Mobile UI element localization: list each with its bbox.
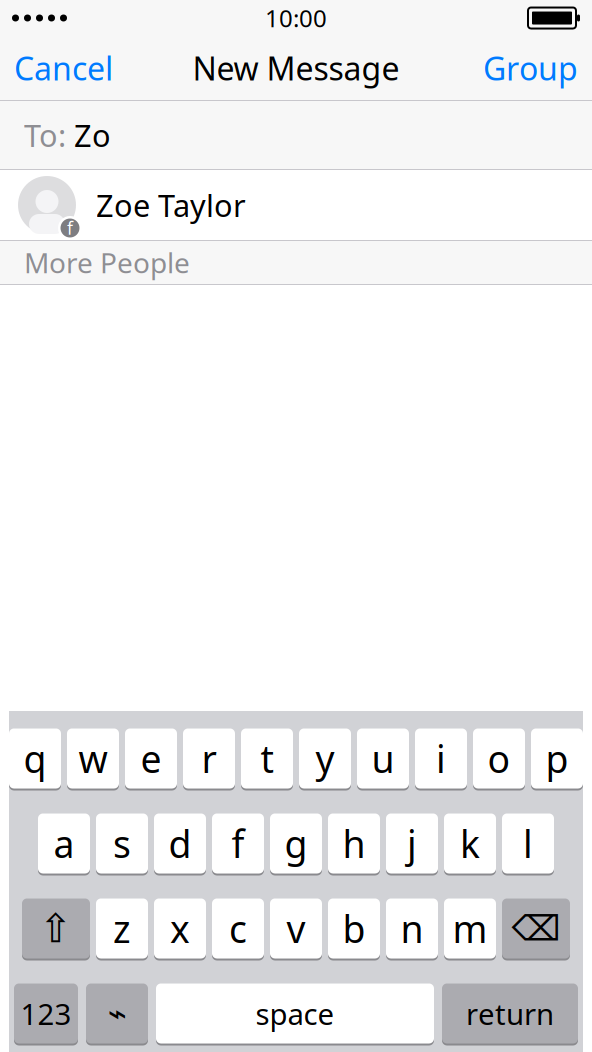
button[interactable]: Group [469, 37, 592, 99]
staticText: f [67, 216, 73, 239]
staticText: d [168, 819, 191, 868]
staticText: v [286, 904, 305, 953]
staticText: t [260, 734, 273, 783]
button[interactable]: i [415, 728, 467, 790]
staticText: s [113, 819, 131, 868]
staticText: z [113, 904, 131, 953]
button[interactable]: w [67, 728, 119, 790]
staticText: h [342, 819, 365, 868]
staticText: Zo [66, 115, 111, 155]
button[interactable]: space [156, 983, 434, 1045]
button[interactable]: To: [0, 101, 592, 169]
staticText: Zoe Taylor [96, 185, 246, 225]
button[interactable]: g [270, 813, 322, 875]
staticText: More People [24, 244, 190, 281]
button[interactable]: t [241, 728, 293, 790]
staticText: o [487, 734, 510, 783]
staticText: f [231, 819, 244, 868]
staticText: ⌁ [107, 995, 126, 1032]
staticText: space [255, 994, 334, 1033]
button[interactable]: d [154, 813, 206, 875]
button[interactable]: p [531, 728, 583, 790]
button[interactable]: s [96, 813, 148, 875]
staticText: Cancel [14, 47, 113, 89]
staticText: Group [483, 47, 578, 89]
button[interactable]: j [386, 813, 438, 875]
button[interactable]: z [96, 898, 148, 960]
staticText: To: [24, 115, 66, 155]
staticText: l [523, 819, 533, 868]
button[interactable]: y [299, 728, 351, 790]
button[interactable]: Delete [502, 898, 570, 960]
button[interactable]: u [357, 728, 409, 790]
staticText: x [170, 904, 190, 953]
button[interactable]: x [154, 898, 206, 960]
button[interactable]: h [328, 813, 380, 875]
staticText: a [53, 819, 74, 868]
button[interactable]: c [212, 898, 264, 960]
button[interactable]: Cancel [0, 37, 127, 99]
staticText: m [452, 904, 487, 953]
staticText: k [460, 819, 480, 868]
button[interactable]: l [502, 813, 554, 875]
staticText: q [23, 734, 46, 783]
button[interactable]: Shift [22, 898, 90, 960]
button[interactable]: o [473, 728, 525, 790]
staticText: g [284, 819, 307, 868]
staticText: ⌫ [511, 909, 560, 948]
staticText: e [140, 734, 161, 783]
staticText: i [436, 734, 446, 783]
staticText: ⇧ [39, 906, 73, 951]
staticText: 10:00 [265, 2, 327, 34]
button[interactable]: b [328, 898, 380, 960]
button[interactable]: a [38, 813, 90, 875]
staticText: p [545, 734, 568, 783]
button[interactable]: q [9, 728, 61, 790]
staticText: y [315, 734, 334, 783]
staticText: return [466, 994, 554, 1033]
button[interactable]: v [270, 898, 322, 960]
button[interactable]: k [444, 813, 496, 875]
button[interactable]: Dictate [86, 983, 148, 1045]
button[interactable]: 123 [14, 983, 78, 1045]
staticText: j [407, 819, 417, 868]
staticText: w [78, 734, 107, 783]
button[interactable]: return [442, 983, 578, 1045]
staticText: n [400, 904, 423, 953]
button[interactable]: m [444, 898, 496, 960]
button[interactable]: f [0, 170, 592, 240]
staticText: New Message [192, 47, 399, 89]
button[interactable]: r [183, 728, 235, 790]
button[interactable]: n [386, 898, 438, 960]
button[interactable]: f [212, 813, 264, 875]
staticText: b [342, 904, 365, 953]
staticText: u [371, 734, 394, 783]
staticText: 123 [20, 994, 71, 1033]
staticText: r [201, 734, 216, 783]
button[interactable]: e [125, 728, 177, 790]
staticText: c [229, 904, 247, 953]
